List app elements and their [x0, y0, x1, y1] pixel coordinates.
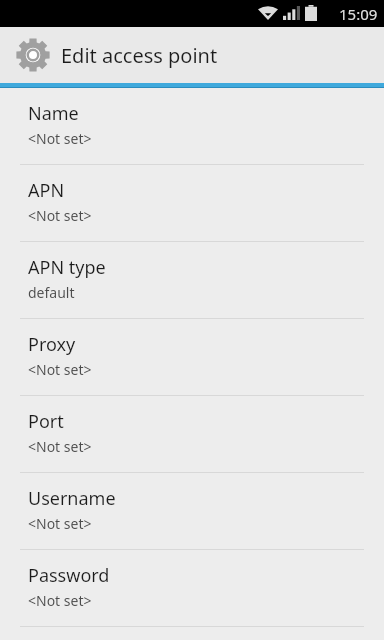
staticText: <Not set> [28, 206, 92, 225]
button[interactable]: Settings [0, 27, 384, 83]
staticText: 15:09 [339, 4, 378, 24]
staticText: <Not set> [28, 591, 92, 610]
staticText: Edit access point [61, 42, 218, 69]
staticText: <Not set> [28, 437, 92, 456]
button[interactable]: APN type [0, 242, 384, 318]
staticText: Username [28, 486, 116, 511]
staticText: <Not set> [28, 129, 92, 148]
staticText: <Not set> [28, 514, 92, 533]
button[interactable]: Port [0, 396, 384, 472]
staticText: default [28, 283, 75, 302]
staticText: APN type [28, 255, 106, 280]
staticText: Name [28, 101, 79, 126]
button[interactable]: Username [0, 473, 384, 549]
button[interactable]: Password [0, 550, 384, 626]
staticText: Password [28, 563, 110, 588]
button[interactable]: Name [0, 88, 384, 164]
staticText: <Not set> [28, 360, 92, 379]
button[interactable]: Proxy [0, 319, 384, 395]
button[interactable]: APN [0, 165, 384, 241]
staticText: Proxy [28, 332, 76, 357]
staticText: APN [28, 178, 65, 203]
other: Settings [16, 38, 50, 72]
staticText: Port [28, 409, 64, 434]
